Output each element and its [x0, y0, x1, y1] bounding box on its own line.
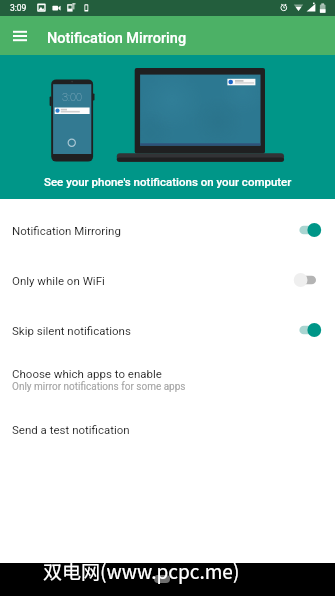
staticText: 双电网(www.pcpc.me): [43, 557, 240, 585]
staticText: Choose which apps to enable: [12, 367, 162, 380]
staticText: Skip silent notifications: [12, 324, 131, 337]
staticText: See your phone's notifications on your c…: [44, 175, 292, 188]
button[interactable]: Send a test notification: [0, 405, 335, 454]
button[interactable]: Skip silent notifications: [0, 305, 335, 355]
button[interactable]: Choose which apps to enable: [0, 355, 335, 405]
staticText: Send a test notification: [12, 423, 130, 436]
staticText: Notification Mirroring: [47, 30, 187, 47]
staticText: 3:09: [10, 3, 27, 13]
staticText: 3:00: [62, 91, 83, 104]
button[interactable]: Open navigation drawer: [6, 22, 34, 50]
staticText: Only mirror notifications for some apps: [12, 381, 186, 393]
staticText: Only while on WiFi: [12, 274, 105, 287]
staticText: Notification Mirroring: [12, 224, 121, 237]
button[interactable]: Notification Mirroring: [0, 205, 335, 255]
button[interactable]: Only while on WiFi: [0, 255, 335, 305]
